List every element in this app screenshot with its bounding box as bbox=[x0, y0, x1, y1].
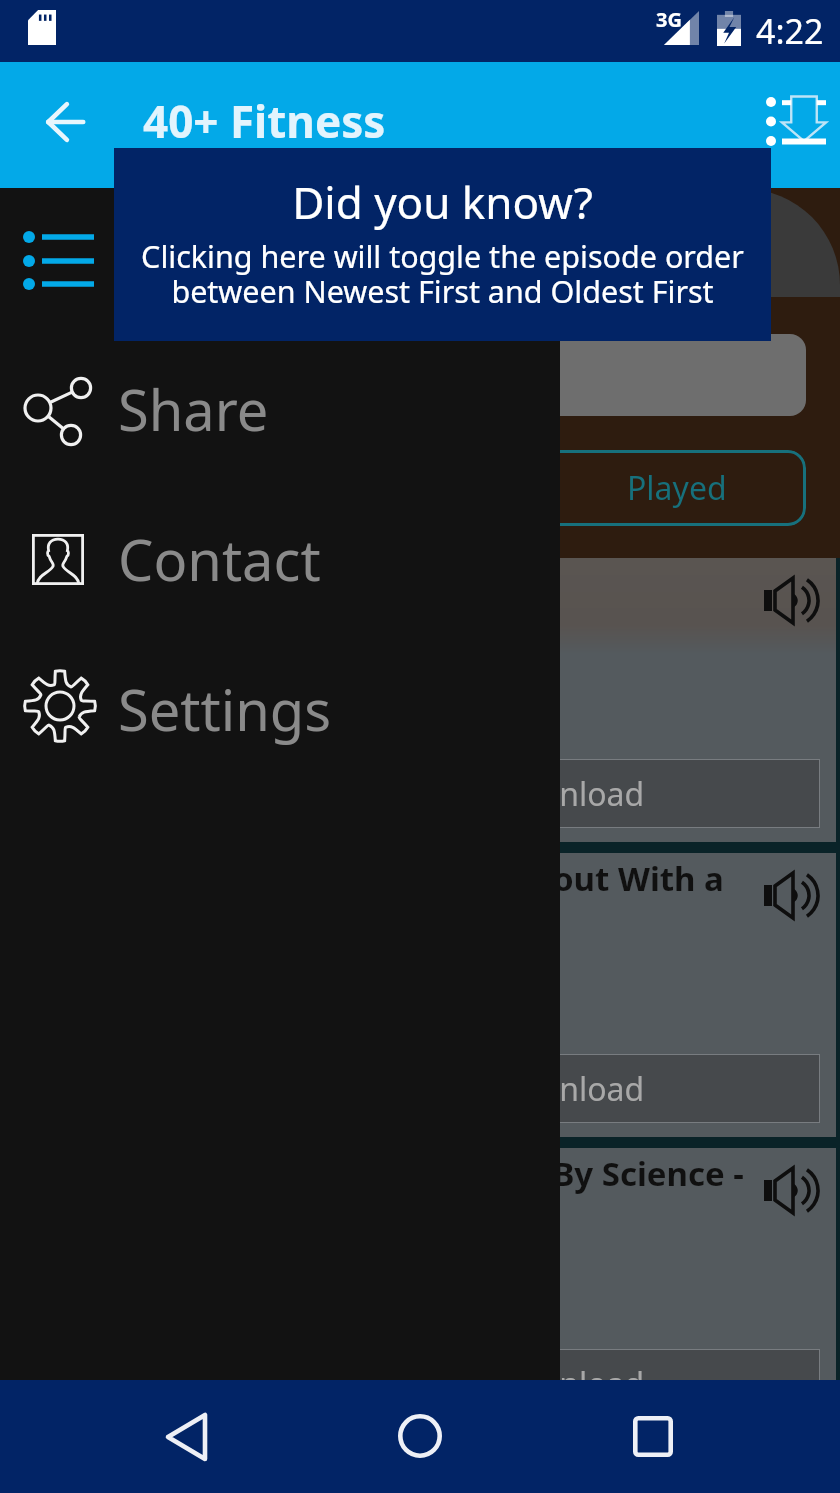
button[interactable]: Home bbox=[365, 1380, 475, 1493]
button[interactable]: Settings bbox=[0, 634, 560, 784]
staticText: The Perfect Beginner Gym Workout With a … bbox=[28, 856, 768, 901]
staticText: Contact bbox=[118, 521, 321, 597]
staticText: Share bbox=[118, 371, 269, 447]
button[interactable]: Share bbox=[0, 334, 560, 484]
button[interactable]: Download bbox=[18, 759, 820, 828]
staticText: 4:22 bbox=[756, 8, 824, 54]
button[interactable]: The Perfect Beginner Gym Workout With a … bbox=[0, 853, 836, 1137]
staticText: Clicking here will toggle the episode or… bbox=[114, 235, 771, 277]
staticText: 40+ Fitness bbox=[143, 91, 386, 151]
button[interactable]: Download bbox=[0, 558, 836, 842]
button[interactable] bbox=[96, 334, 806, 416]
staticText: Played bbox=[627, 466, 727, 510]
button[interactable]: Toggle episode order bbox=[0, 188, 560, 334]
button[interactable]: Recent apps bbox=[598, 1380, 708, 1493]
button[interactable]: Contact bbox=[0, 484, 560, 634]
staticText: Download bbox=[492, 772, 645, 816]
staticText bbox=[24, 561, 764, 606]
staticText: between Newest First and Oldest First bbox=[114, 270, 771, 312]
staticText: Download bbox=[492, 1362, 645, 1406]
button[interactable]: Download bbox=[18, 1349, 820, 1418]
button[interactable]: More options bbox=[710, 62, 840, 188]
staticText: Settings bbox=[118, 671, 332, 747]
button[interactable]: Played bbox=[548, 450, 806, 526]
button[interactable]: Did you know? bbox=[114, 148, 771, 341]
button[interactable]: Back bbox=[132, 1380, 242, 1493]
staticText: Download bbox=[492, 1067, 645, 1111]
button[interactable]: Back bbox=[0, 62, 130, 188]
staticText: 3G bbox=[656, 6, 682, 33]
staticText: Did you know? bbox=[114, 172, 771, 232]
staticText: Get Stronger In 30 Days - Proven By Scie… bbox=[14, 1151, 754, 1196]
button[interactable]: Download bbox=[18, 1054, 820, 1123]
button[interactable]: Get Stronger In 30 Days - Proven By Scie… bbox=[0, 1148, 836, 1432]
